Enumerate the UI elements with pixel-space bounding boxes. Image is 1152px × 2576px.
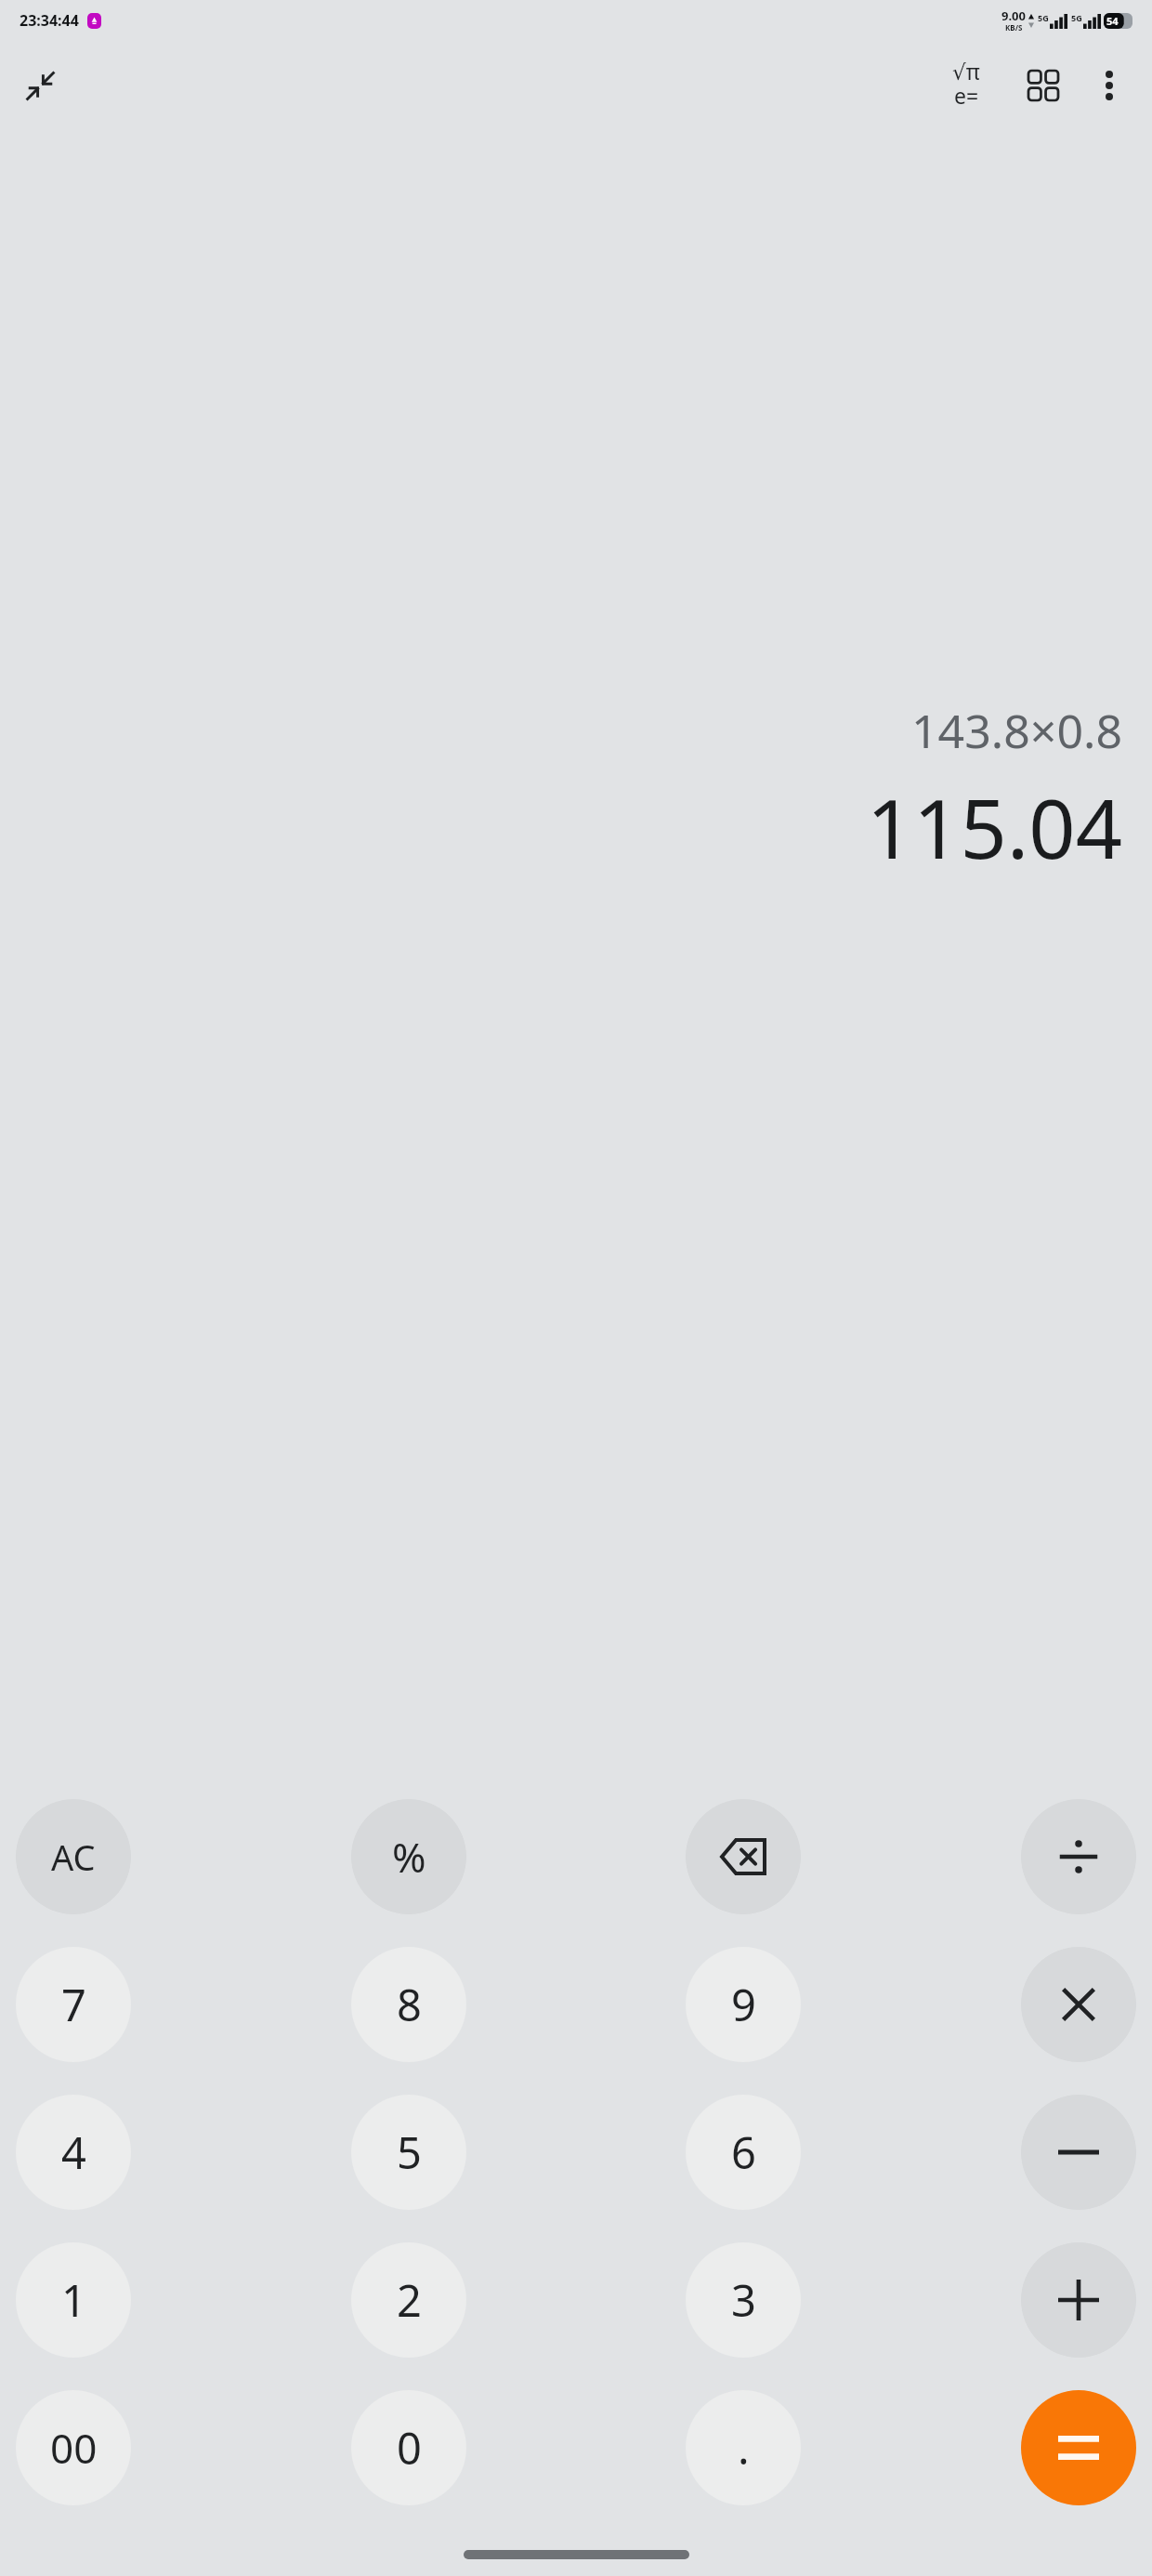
button[interactable]: More options bbox=[1081, 58, 1137, 113]
button[interactable]: Minus bbox=[1021, 2095, 1136, 2210]
staticText: 5G bbox=[1038, 12, 1049, 23]
staticText: 5 bbox=[397, 2123, 422, 2182]
staticText: 7 bbox=[61, 1975, 86, 2034]
staticText: 23:34:44 bbox=[20, 10, 79, 31]
button[interactable]: 9 bbox=[686, 1947, 801, 2062]
staticText: 9 bbox=[731, 1975, 756, 2034]
staticText: 143.8×0.8 bbox=[911, 699, 1122, 762]
button[interactable]: 4 bbox=[16, 2095, 131, 2210]
button[interactable]: 6 bbox=[686, 2095, 801, 2210]
staticText: 2 bbox=[397, 2270, 422, 2330]
staticText: 9.00 bbox=[1001, 7, 1026, 24]
staticText: 4 bbox=[61, 2123, 86, 2182]
staticText: e= bbox=[954, 81, 979, 110]
staticText: % bbox=[392, 1829, 426, 1885]
staticText: √π bbox=[952, 57, 980, 85]
button[interactable]: Backspace bbox=[686, 1799, 801, 1914]
button[interactable]: % bbox=[351, 1799, 466, 1914]
staticText: 1 bbox=[61, 2270, 86, 2330]
button[interactable]: 7 bbox=[16, 1947, 131, 2062]
staticText: 5G bbox=[1071, 12, 1082, 23]
button[interactable]: AC bbox=[16, 1799, 131, 1914]
button[interactable]: Scientific mode bbox=[925, 55, 1007, 116]
button[interactable]: . bbox=[686, 2390, 801, 2505]
staticText: 0 bbox=[397, 2418, 422, 2477]
staticText: 54 bbox=[1106, 14, 1119, 28]
staticText: 6 bbox=[731, 2123, 756, 2182]
button[interactable]: 1 bbox=[16, 2242, 131, 2358]
button[interactable]: Equals bbox=[1021, 2390, 1136, 2505]
staticText: . bbox=[738, 2418, 750, 2477]
button[interactable]: 0 bbox=[351, 2390, 466, 2505]
staticText: 115.04 bbox=[866, 771, 1122, 883]
button[interactable]: Collapse bbox=[11, 57, 69, 114]
button[interactable]: 00 bbox=[16, 2390, 131, 2505]
button[interactable]: Multiply bbox=[1021, 1947, 1136, 2062]
button[interactable]: 8 bbox=[351, 1947, 466, 2062]
staticText: KB/S bbox=[1005, 22, 1023, 33]
button[interactable]: Divide bbox=[1021, 1799, 1136, 1914]
staticText: 3 bbox=[731, 2270, 756, 2330]
button[interactable]: 2 bbox=[351, 2242, 466, 2358]
button[interactable]: 3 bbox=[686, 2242, 801, 2358]
button[interactable]: Unit converter bbox=[1013, 55, 1074, 116]
staticText: AC bbox=[51, 1833, 96, 1881]
staticText: 8 bbox=[397, 1975, 422, 2034]
button[interactable]: Plus bbox=[1021, 2242, 1136, 2358]
button[interactable]: 5 bbox=[351, 2095, 466, 2210]
staticText: 00 bbox=[50, 2420, 98, 2476]
